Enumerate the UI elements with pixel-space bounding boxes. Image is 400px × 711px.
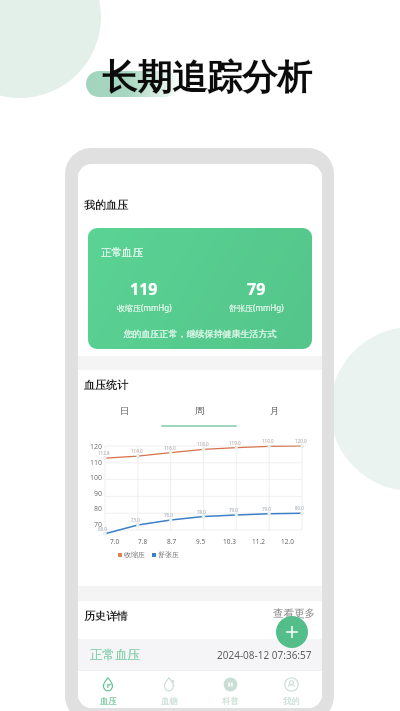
staticText: 119 (130, 278, 158, 300)
staticText: 90 (94, 489, 103, 499)
staticText: 正常血压 (101, 246, 143, 259)
staticText: 118.0 (197, 441, 209, 447)
button[interactable]: 正常血压 (78, 639, 322, 670)
button[interactable]: 查看更多 (273, 607, 322, 620)
staticText: 科普 (222, 696, 239, 707)
button[interactable]: Add record (276, 616, 308, 648)
staticText: 您的血压正常，继续保持健康生活方式 (88, 328, 312, 339)
staticText: 我的血压 (84, 198, 128, 212)
staticText: 79 (247, 278, 266, 300)
staticText: 血压统计 (84, 378, 128, 392)
staticText: 9.5 (196, 537, 206, 546)
staticText: 73.0 (131, 517, 140, 523)
staticText: 78.0 (197, 509, 206, 515)
button[interactable]: 周 (184, 400, 216, 422)
staticText: 2024-08-12 07:36:57 (217, 648, 312, 662)
staticText: 历史详情 (84, 609, 128, 623)
staticText: 7.8 (138, 537, 148, 546)
staticText: 我的 (283, 696, 300, 707)
staticText: 76.0 (164, 512, 173, 518)
button[interactable]: 正常血压 (88, 228, 312, 349)
staticText: 11.2 (252, 537, 265, 546)
staticText: 12.0 (281, 537, 294, 546)
staticText: 舒张压 (158, 550, 179, 559)
button[interactable]: 我的 (261, 671, 322, 708)
staticText: 112.8 (98, 450, 110, 456)
button[interactable]: 科普 (200, 671, 261, 708)
staticText: 7.0 (110, 537, 120, 546)
staticText: 查看更多 (273, 607, 315, 620)
staticText: 80 (94, 504, 103, 514)
staticText: 68.0 (98, 526, 107, 532)
button[interactable]: 血糖 (139, 671, 200, 708)
staticText: 8.7 (167, 537, 177, 546)
staticText: 血糖 (161, 696, 178, 707)
staticText: 收缩压(mmHg) (117, 302, 172, 313)
staticText: 10.3 (223, 537, 236, 546)
staticText: 收缩压 (124, 550, 145, 559)
staticText: 119.0 (229, 440, 241, 446)
staticText: 血压 (100, 696, 117, 707)
staticText: 80.0 (295, 505, 304, 511)
staticText: 120 (90, 442, 103, 452)
staticText: 114.0 (131, 448, 143, 454)
staticText: 79.0 (262, 506, 271, 512)
staticText: 100 (90, 473, 103, 483)
staticText: 79.0 (229, 507, 238, 513)
staticText: 120.0 (295, 438, 307, 444)
staticText: 110 (90, 458, 103, 468)
staticText: 日 (120, 405, 130, 417)
staticText: 周 (195, 405, 205, 417)
staticText: 70 (94, 520, 103, 530)
button[interactable]: 月 (259, 400, 291, 422)
staticText: 长期追踪分析 (102, 55, 312, 99)
staticText: 116.0 (164, 445, 176, 451)
staticText: 正常血压 (90, 647, 140, 663)
staticText: 119.0 (262, 438, 274, 444)
staticText: 月 (270, 405, 280, 417)
button[interactable]: 血压 (78, 671, 139, 708)
button[interactable]: 日 (109, 400, 141, 422)
staticText: 舒张压(mmHg) (229, 302, 284, 313)
